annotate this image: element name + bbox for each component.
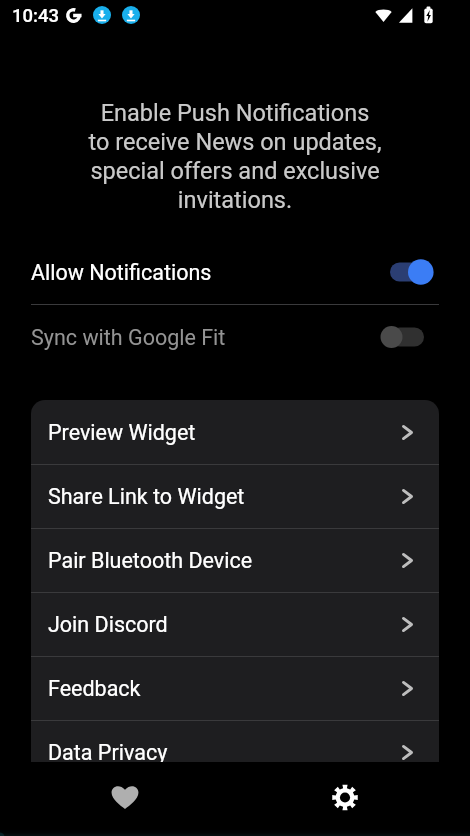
button[interactable]: Join Discord (31, 592, 439, 656)
button[interactable]: Allow Notifications (0, 240, 470, 304)
button[interactable]: Pair Bluetooth Device (31, 528, 439, 592)
staticText: 10:43 (12, 5, 59, 27)
button[interactable]: Favorites (80, 763, 169, 836)
button[interactable]: Feedback (31, 656, 439, 720)
button[interactable]: Sync with Google Fit (0, 305, 470, 369)
staticText: Sync with Google Fit (31, 325, 226, 350)
staticText: Enable Push Notifications to receive New… (0, 99, 470, 214)
button[interactable]: Preview Widget (31, 400, 439, 464)
staticText: Feedback (48, 676, 141, 701)
staticText: Pair Bluetooth Device (48, 548, 253, 573)
staticText: Data Privacy (48, 740, 168, 762)
button[interactable]: Settings (300, 763, 390, 836)
staticText: Allow Notifications (31, 260, 212, 285)
button[interactable]: Data Privacy (31, 720, 439, 762)
button[interactable]: Share Link to Widget (31, 464, 439, 528)
staticText: Share Link to Widget (48, 484, 245, 509)
staticText: Preview Widget (48, 420, 196, 445)
staticText: Join Discord (48, 612, 168, 637)
